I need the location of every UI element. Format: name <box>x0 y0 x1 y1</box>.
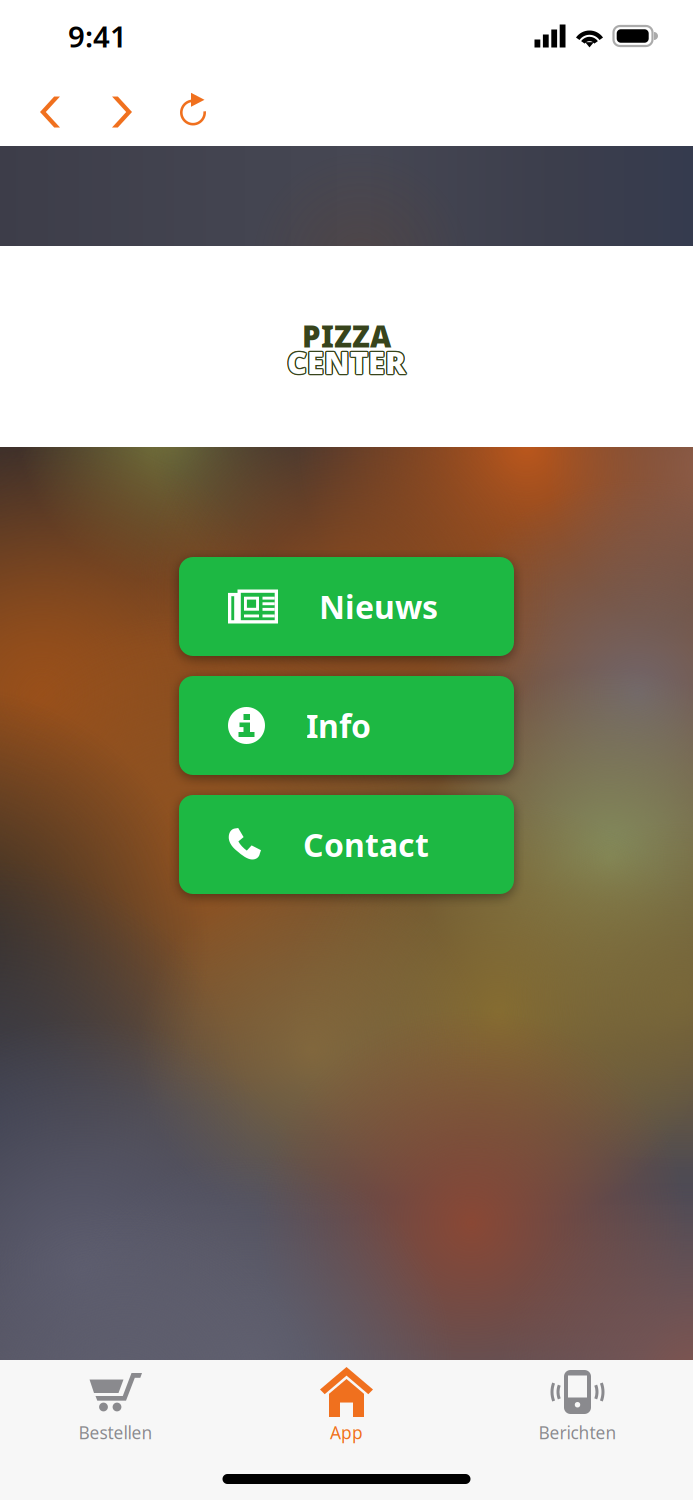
button[interactable]: App <box>231 1360 462 1444</box>
staticText: CENTER <box>287 343 406 384</box>
staticText: Nieuws <box>319 585 438 628</box>
staticText: 9:41 <box>68 16 127 55</box>
staticText: CENTER <box>287 340 406 381</box>
staticText: CENTER <box>288 342 407 382</box>
staticText: PIZZA <box>302 317 391 356</box>
button[interactable]: Berichten <box>462 1360 693 1444</box>
button[interactable]: Reload <box>157 78 229 146</box>
staticText: Bestellen <box>78 1421 152 1444</box>
button[interactable]: Back <box>13 78 87 146</box>
staticText: Info <box>306 704 371 747</box>
button[interactable]: Info <box>179 676 514 775</box>
staticText: CENTER <box>286 341 405 381</box>
staticText: Berichten <box>538 1421 616 1444</box>
button[interactable]: Bestellen <box>0 1360 231 1444</box>
button[interactable]: Nieuws <box>179 557 514 656</box>
staticText: CENTER <box>286 342 405 382</box>
staticText: CENTER <box>287 342 406 382</box>
staticText: CENTER <box>288 341 407 381</box>
button[interactable]: Forward <box>87 78 157 146</box>
staticText: CENTER <box>286 342 405 383</box>
staticText: Contact <box>303 823 429 866</box>
staticText: CENTER <box>288 342 407 383</box>
staticText: App <box>330 1421 363 1444</box>
button[interactable]: Contact <box>179 795 514 894</box>
